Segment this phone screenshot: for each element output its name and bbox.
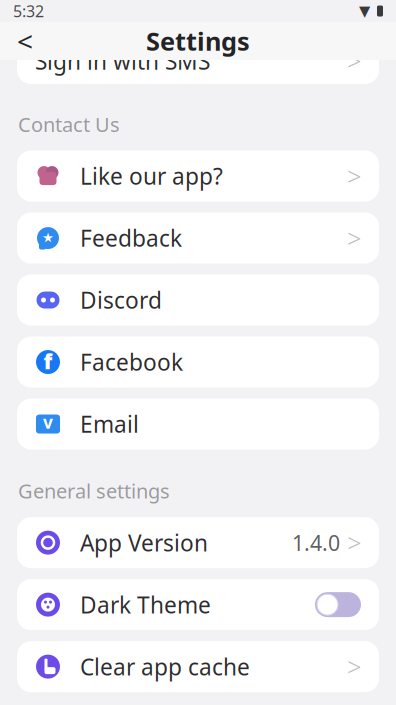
button[interactable]: App Version	[17, 517, 379, 568]
staticText: Email	[80, 409, 139, 439]
button[interactable]: Back	[8, 24, 42, 58]
staticText: Dark Theme	[80, 590, 211, 620]
button[interactable]: Like our app?	[17, 151, 379, 202]
button[interactable]: Clear app cache	[17, 641, 379, 692]
staticText: >	[347, 221, 361, 255]
staticText: >	[347, 526, 361, 559]
staticText: General settings	[18, 478, 170, 504]
staticText: 1.4.0	[292, 528, 340, 557]
staticText: Sign in with SMS	[35, 46, 210, 76]
staticText: Clear app cache	[80, 652, 250, 682]
staticText: >	[347, 44, 361, 78]
staticText: Discord	[80, 285, 162, 315]
staticText: Like our app?	[80, 161, 223, 191]
button[interactable]: Dark Theme	[17, 579, 379, 630]
button[interactable]: v	[17, 399, 379, 450]
button[interactable]: ★	[17, 213, 379, 264]
staticText: v	[43, 411, 53, 434]
staticText: ★	[42, 230, 54, 245]
staticText: Feedback	[80, 223, 182, 253]
staticText: ▼	[359, 3, 370, 19]
staticText: Facebook	[80, 347, 183, 377]
staticText: >	[347, 650, 361, 683]
staticText: <	[17, 22, 33, 60]
button[interactable]: Discord	[17, 275, 379, 326]
staticText: f	[43, 347, 52, 375]
staticText: App Version	[80, 528, 208, 558]
button[interactable]: f	[17, 337, 379, 388]
staticText: 5:32	[13, 0, 44, 22]
staticText: Contact Us	[18, 111, 120, 138]
staticText: Settings	[146, 24, 250, 58]
staticText: >	[347, 159, 361, 193]
button[interactable]: Sign in with SMS	[17, 38, 379, 84]
